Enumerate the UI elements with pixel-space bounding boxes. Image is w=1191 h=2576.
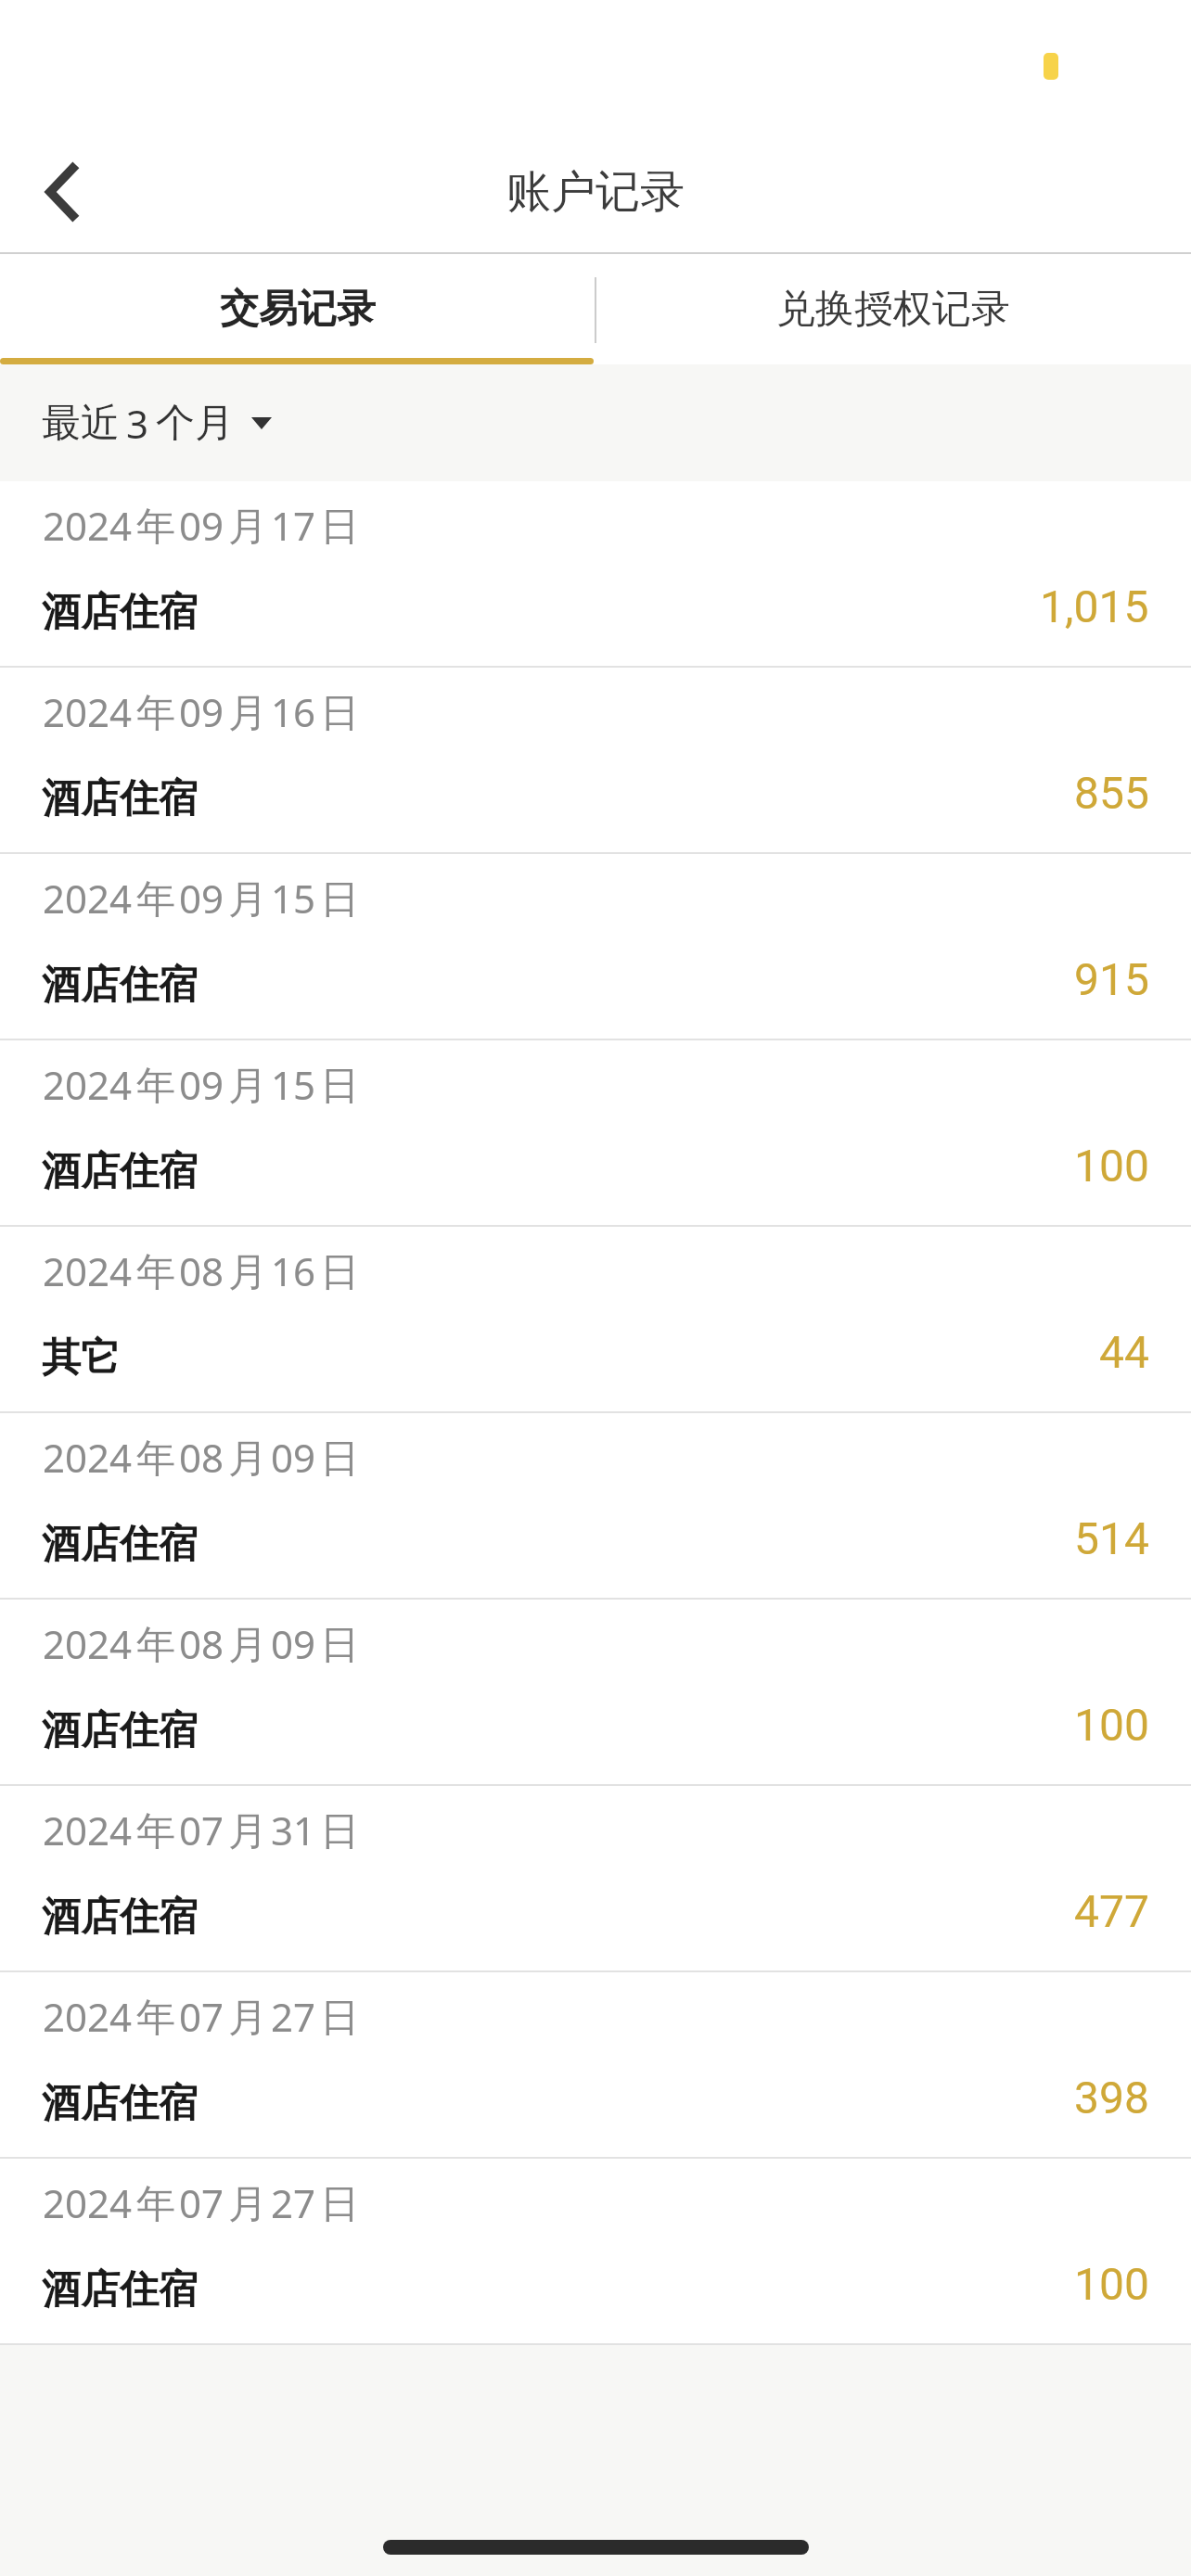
staticText: 酒店住宿 (42, 1520, 198, 1569)
staticText: 1,015 (1040, 580, 1149, 632)
staticText: 07 (179, 1804, 224, 1856)
staticText: 09 (179, 685, 224, 738)
staticText: 月 (228, 875, 267, 925)
staticText: 酒店住宿 (42, 774, 198, 823)
staticText: 月 (228, 1994, 267, 2043)
staticText: 个月 (156, 399, 234, 448)
staticText: 月 (228, 503, 267, 552)
staticText: 日 (320, 1621, 359, 1670)
staticText: 16 (271, 1244, 316, 1297)
staticText: 07 (179, 1990, 224, 2043)
staticText: 酒店住宿 (42, 1706, 198, 1755)
staticText: 酒店住宿 (42, 2079, 198, 2128)
staticText: 09 (179, 872, 224, 925)
staticText: 27 (271, 1990, 316, 2043)
staticText: 日 (320, 875, 359, 925)
staticText: 月 (228, 1062, 267, 1111)
staticText: 31 (271, 1804, 316, 1856)
staticText: 年 (136, 2180, 175, 2229)
staticText: 年 (136, 1062, 175, 1111)
button[interactable]: 2024 (0, 1040, 1191, 1225)
staticText: 日 (320, 1994, 359, 2043)
staticText: 2024 (43, 1990, 133, 2043)
staticText: 2024 (43, 1244, 133, 1297)
staticText: 月 (228, 1435, 267, 1484)
button[interactable]: 2024 (0, 1413, 1191, 1598)
staticText: 年 (136, 875, 175, 925)
button[interactable]: 2024 (0, 1786, 1191, 1970)
staticText: 2024 (43, 872, 133, 925)
staticText: 2024 (43, 1617, 133, 1670)
button[interactable]: 最近3个月 (42, 397, 272, 450)
staticText: 08 (179, 1617, 224, 1670)
staticText: 15 (271, 872, 316, 925)
staticText: 915 (1074, 953, 1149, 1005)
staticText: 477 (1074, 1885, 1149, 1937)
staticText: 日 (320, 689, 359, 738)
staticText: 07 (179, 2176, 224, 2229)
staticText: 09 (271, 1617, 316, 1670)
staticText: 44 (1099, 1326, 1149, 1378)
button[interactable]: 2024 (0, 1227, 1191, 1411)
staticText: 514 (1074, 1512, 1149, 1564)
staticText: 日 (320, 1248, 359, 1297)
staticText: 年 (136, 1807, 175, 1856)
staticText: 日 (320, 1062, 359, 1111)
staticText: 年 (136, 1435, 175, 1484)
staticText: 年 (136, 1994, 175, 2043)
button[interactable]: 2024 (0, 1972, 1191, 2157)
staticText: 100 (1074, 1699, 1149, 1751)
staticText: 日 (320, 503, 359, 552)
staticText: 日 (320, 1435, 359, 1484)
staticText: 08 (179, 1244, 224, 1297)
staticText: 酒店住宿 (42, 2265, 198, 2315)
staticText: 2024 (43, 499, 133, 552)
staticText: 2024 (43, 1804, 133, 1856)
staticText: 交易记录 (220, 285, 376, 334)
staticText: 年 (136, 503, 175, 552)
staticText: 酒店住宿 (42, 961, 198, 1010)
staticText: 月 (228, 1621, 267, 1670)
button[interactable]: 2024 (0, 2159, 1191, 2343)
staticText: 月 (228, 2180, 267, 2229)
staticText: 年 (136, 1248, 175, 1297)
staticText: 月 (228, 689, 267, 738)
staticText: 2024 (43, 1431, 133, 1484)
staticText: 账户记录 (506, 164, 685, 220)
staticText: 2024 (43, 1058, 133, 1111)
staticText: 月 (228, 1807, 267, 1856)
staticText: 日 (320, 1807, 359, 1856)
staticText: 酒店住宿 (42, 588, 198, 637)
staticText: 15 (271, 1058, 316, 1111)
staticText: 08 (179, 1431, 224, 1484)
staticText: 月 (228, 1248, 267, 1297)
staticText: 最近 (42, 399, 120, 448)
staticText: 酒店住宿 (42, 1893, 198, 1942)
staticText: 年 (136, 689, 175, 738)
button[interactable]: 交易记录 (0, 254, 595, 364)
button[interactable]: 2024 (0, 854, 1191, 1039)
staticText: 09 (179, 1058, 224, 1111)
staticText: 酒店住宿 (42, 1147, 198, 1196)
staticText: 398 (1074, 2072, 1149, 2123)
staticText: 年 (136, 1621, 175, 1670)
staticText: 100 (1074, 2258, 1149, 2310)
staticText: 09 (179, 499, 224, 552)
staticText: 100 (1074, 1140, 1149, 1192)
staticText: 855 (1074, 767, 1149, 819)
staticText: 兑换授权记录 (776, 285, 1010, 334)
button[interactable]: 2024 (0, 1600, 1191, 1784)
button[interactable]: 2024 (0, 668, 1191, 852)
staticText: 日 (320, 2180, 359, 2229)
button[interactable]: 2024 (0, 481, 1191, 666)
button[interactable]: 兑换授权记录 (595, 254, 1191, 364)
staticText: 其它 (42, 1333, 120, 1383)
staticText: 27 (271, 2176, 316, 2229)
button[interactable]: Back (15, 144, 111, 240)
staticText: 17 (271, 499, 316, 552)
staticText: 09 (271, 1431, 316, 1484)
staticText: 3 (126, 397, 149, 450)
staticText: 2024 (43, 685, 133, 738)
staticText: 16 (271, 685, 316, 738)
staticText: 2024 (43, 2176, 133, 2229)
